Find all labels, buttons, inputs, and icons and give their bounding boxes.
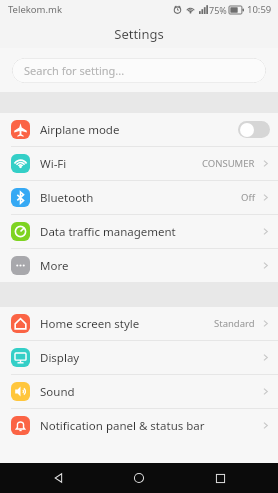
button[interactable]: Search for setting... (12, 58, 266, 83)
staticText: Data traffic management (40, 224, 261, 240)
button[interactable]: Recent apps (198, 463, 242, 493)
button[interactable]: Data traffic management (0, 215, 278, 248)
staticText: Standard (214, 317, 255, 330)
staticText: Airplane mode (40, 122, 238, 138)
button[interactable]: Airplane mode (0, 113, 278, 146)
staticText: Off (241, 191, 255, 204)
button[interactable]: Display (0, 341, 278, 374)
button[interactable]: Wi-Fi (0, 147, 278, 180)
button[interactable]: Bluetooth (0, 181, 278, 214)
button[interactable]: Home screen style (0, 307, 278, 340)
button[interactable]: Sound (0, 375, 278, 408)
staticText: Notification panel & status bar (40, 418, 261, 434)
staticText: CONSUMER (202, 157, 255, 170)
button[interactable]: Back (37, 463, 81, 493)
button[interactable]: More (0, 249, 278, 282)
staticText: 10:59 (247, 3, 272, 16)
button[interactable]: Airplane mode toggle (238, 121, 270, 138)
staticText: Search for setting... (24, 63, 125, 78)
staticText: Sound (40, 384, 261, 400)
staticText: Display (40, 350, 261, 366)
staticText: Home screen style (40, 316, 214, 332)
staticText: Bluetooth (40, 190, 241, 206)
staticText: More (40, 258, 261, 274)
button[interactable]: Home (117, 463, 161, 493)
staticText: Wi-Fi (40, 156, 202, 172)
staticText: Telekom.mk (8, 3, 62, 16)
staticText: Settings (114, 25, 164, 43)
staticText: 75% (209, 4, 227, 16)
button[interactable]: Notification panel & status bar (0, 409, 278, 442)
